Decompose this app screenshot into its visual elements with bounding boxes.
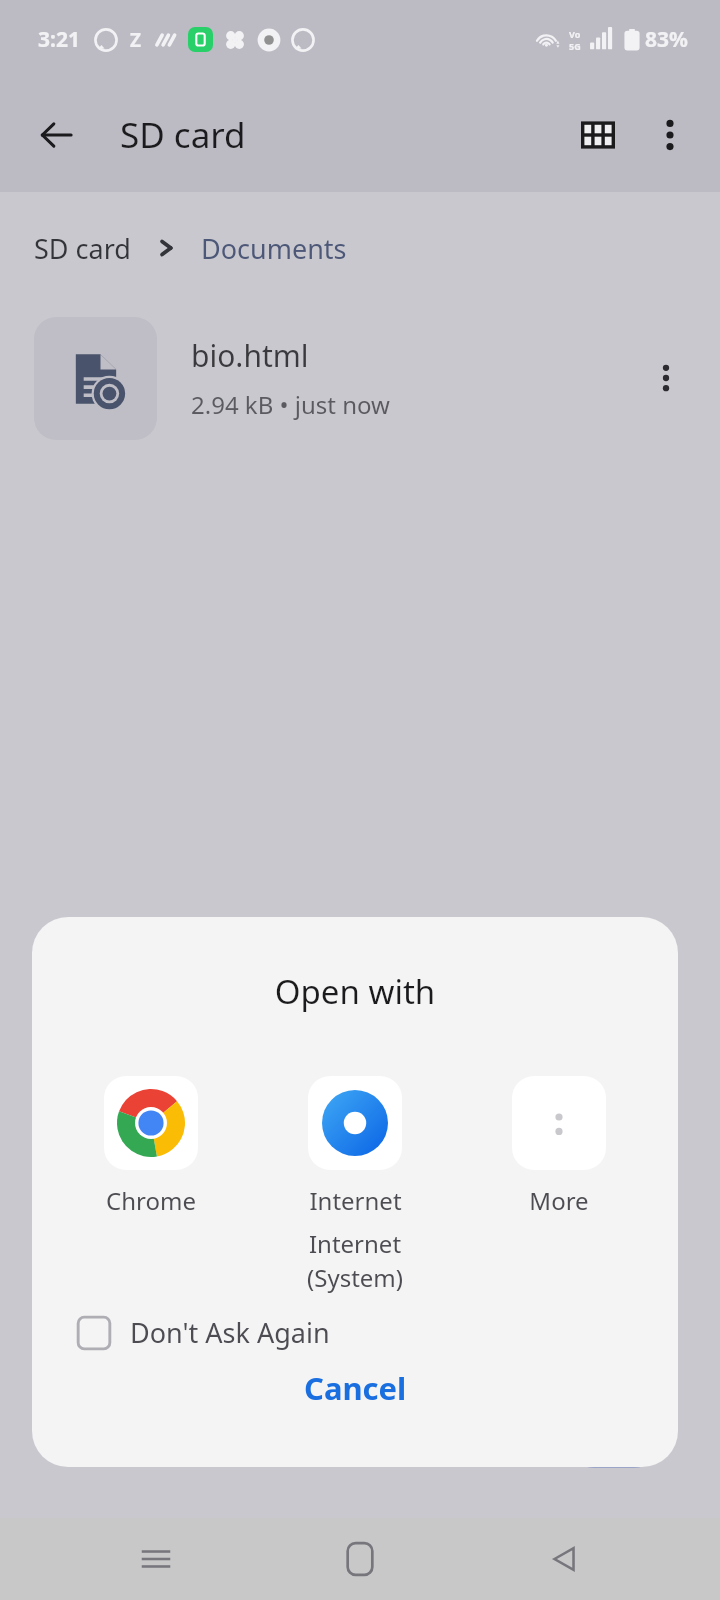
- staticText: Vo: [569, 28, 581, 40]
- staticText: 5G: [569, 40, 581, 52]
- button[interactable]: Cancel: [276, 1357, 435, 1419]
- staticText: Chrome: [106, 1184, 196, 1217]
- button[interactable]: bio.html: [0, 304, 720, 452]
- button[interactable]: More: [474, 1072, 644, 1221]
- button[interactable]: File options: [630, 342, 702, 414]
- button[interactable]: More options: [634, 99, 706, 171]
- button[interactable]: Chrome: [66, 1072, 236, 1221]
- staticText: More: [529, 1184, 589, 1217]
- button[interactable]: Recents: [108, 1523, 204, 1595]
- staticText: Don't Ask Again: [130, 1314, 330, 1351]
- button[interactable]: Grid view: [562, 99, 634, 171]
- staticText: 2.94 kB • just now: [191, 388, 390, 421]
- button[interactable]: Add: [568, 1380, 660, 1468]
- button[interactable]: Internet: [270, 1072, 440, 1298]
- button[interactable]: SD card: [32, 224, 133, 273]
- staticText: Documents: [201, 230, 347, 267]
- button[interactable]: Home: [312, 1523, 408, 1595]
- staticText: SD card: [34, 230, 131, 267]
- button[interactable]: Back: [516, 1523, 612, 1595]
- button[interactable]: Back: [22, 101, 90, 169]
- staticText: Z: [130, 27, 142, 53]
- staticText: 83%: [645, 25, 688, 54]
- staticText: 3:21: [38, 25, 80, 54]
- staticText: Open with: [32, 969, 678, 1014]
- staticText: Internet: [309, 1184, 402, 1217]
- staticText: SD card: [120, 111, 246, 159]
- button[interactable]: Documents: [199, 224, 349, 273]
- staticText: Cancel: [304, 1367, 407, 1409]
- staticText: Internet (System): [307, 1227, 403, 1294]
- staticText: bio.html: [191, 335, 309, 376]
- button[interactable]: Don't Ask Again: [72, 1308, 334, 1357]
